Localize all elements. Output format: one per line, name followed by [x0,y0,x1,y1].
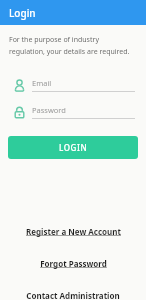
staticText: For the purpose of industry regulation, … [9,35,132,56]
button[interactable]: Email [13,78,135,92]
staticText: Contact Administration [26,290,120,299]
button[interactable]: Contact Administration [0,289,146,300]
staticText: LOGIN [59,142,88,153]
staticText: Email [32,78,52,88]
other: Email [13,79,26,92]
button[interactable]: Password [13,105,135,119]
other: Password [13,106,26,119]
button[interactable]: LOGIN [8,136,138,159]
staticText: Password [32,105,66,115]
staticText: Login [9,6,36,20]
button[interactable]: Register a New Account [0,225,146,238]
button[interactable]: Forgot Password [0,257,146,270]
staticText: Register a New Account [26,226,121,237]
staticText: Forgot Password [40,258,107,269]
